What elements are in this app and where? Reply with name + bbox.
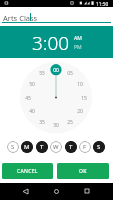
staticText: 00 (53, 67, 59, 74)
staticText: 15 (81, 95, 87, 102)
staticText: T (40, 143, 44, 151)
staticText: M (24, 143, 30, 151)
button[interactable]: T (65, 141, 77, 153)
staticText: 20 (77, 108, 83, 115)
staticText: 55 (39, 70, 45, 77)
staticText: S (11, 143, 15, 151)
staticText: 35 (39, 119, 45, 126)
staticText: S (97, 143, 101, 151)
button[interactable]: PM (74, 44, 82, 51)
button[interactable]: CANCEL (2, 163, 53, 179)
staticText: T (69, 143, 73, 151)
button[interactable]: S (7, 141, 19, 153)
staticText: Arts Class (3, 13, 38, 23)
staticText: 05 (67, 70, 73, 77)
staticText: 25 (67, 119, 73, 126)
button[interactable]: F (79, 141, 91, 153)
button[interactable]: Home (48, 183, 64, 199)
button[interactable]: M (21, 141, 33, 153)
button[interactable]: AM (74, 35, 82, 42)
staticText: OK (79, 168, 87, 175)
staticText: W (53, 143, 59, 151)
staticText: 10 (77, 81, 83, 88)
button[interactable]: OK (57, 163, 109, 179)
button[interactable]: Back (17, 183, 33, 199)
button[interactable]: T (36, 141, 48, 153)
staticText: 40 (29, 108, 35, 115)
staticText: 50 (29, 81, 35, 88)
button[interactable]: S (93, 141, 105, 153)
staticText: CANCEL (17, 168, 38, 175)
button[interactable]: 3:00 (32, 30, 70, 56)
button[interactable]: W (50, 141, 62, 153)
button[interactable]: Recents (79, 183, 95, 199)
staticText: F (83, 143, 87, 151)
staticText: 45 (25, 95, 31, 102)
staticText: 11:50 (96, 1, 109, 8)
staticText: 30 (53, 122, 59, 129)
